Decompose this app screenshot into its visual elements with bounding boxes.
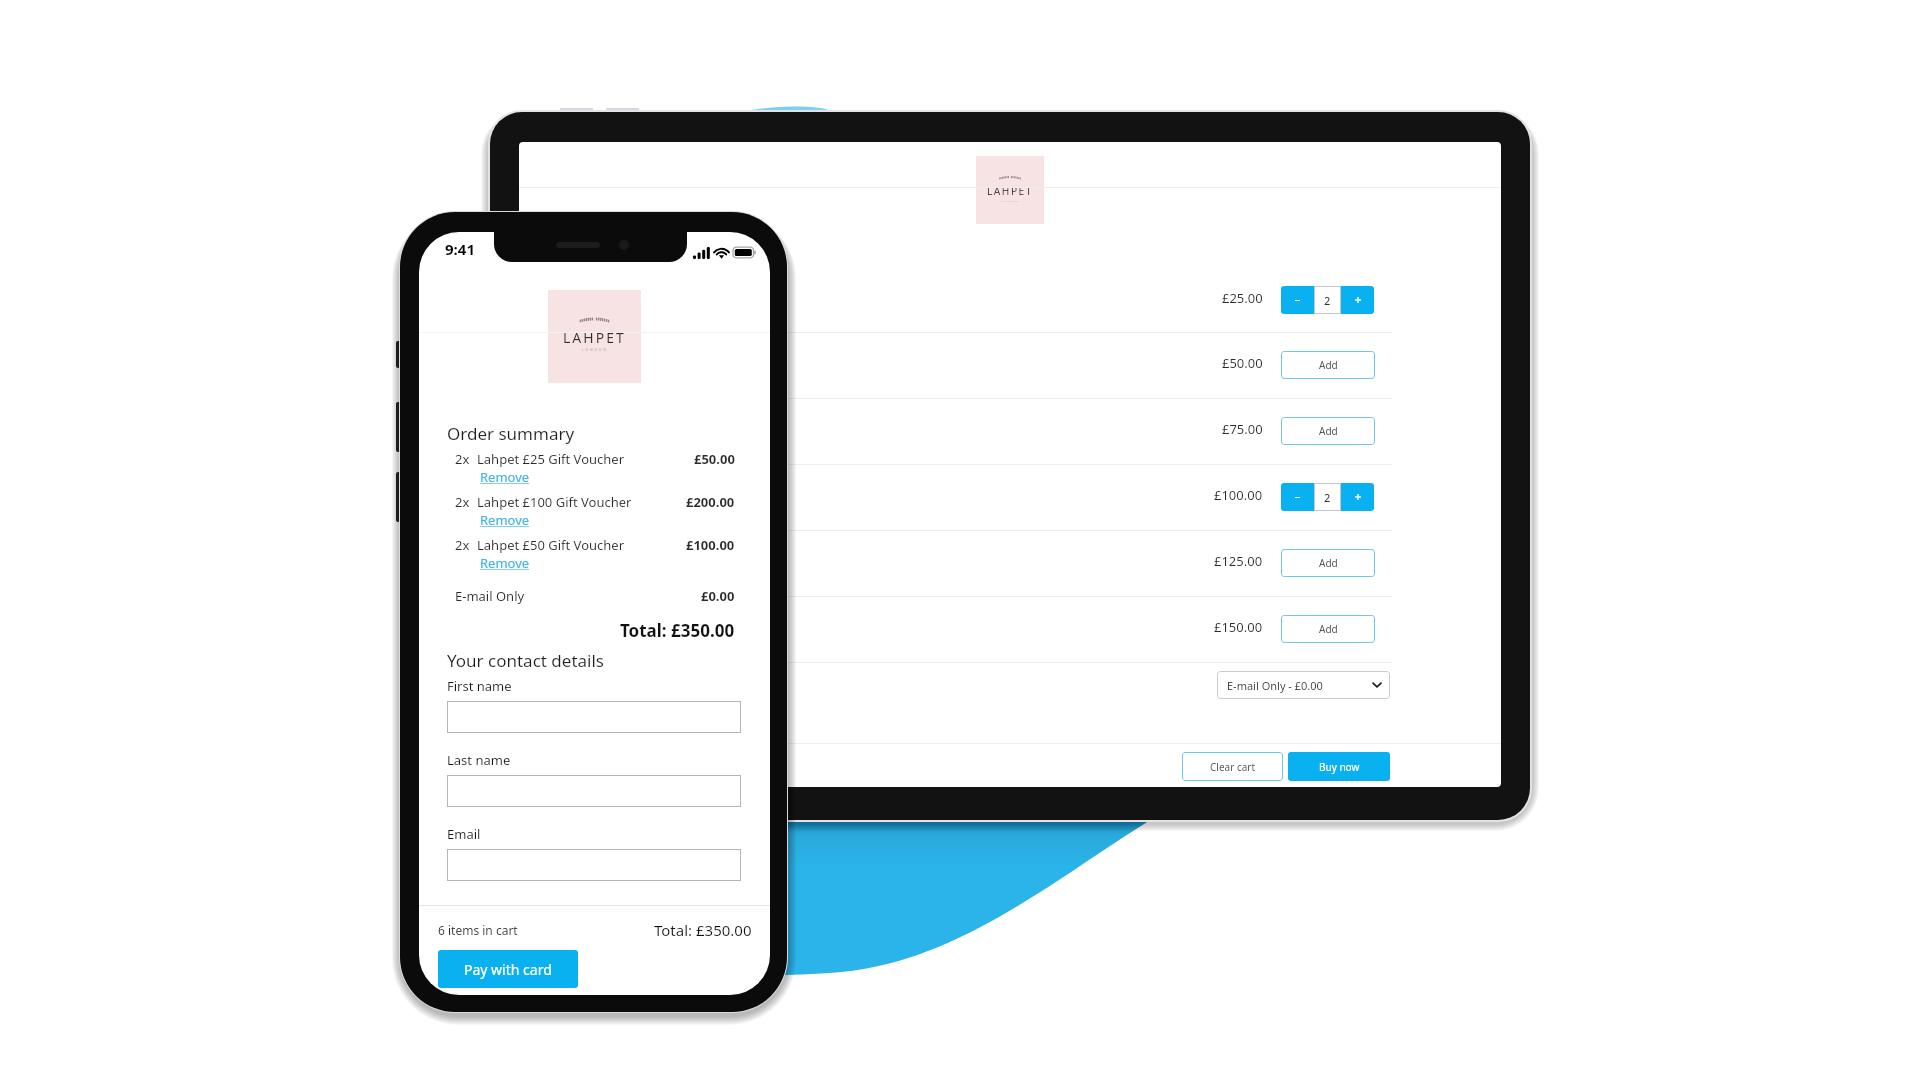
button[interactable]: Add: [1281, 351, 1375, 379]
staticText: £150.00: [1214, 618, 1263, 636]
staticText: 2x: [455, 493, 470, 511]
staticText: LAHPET: [987, 184, 1033, 198]
staticText: Add: [1319, 622, 1338, 636]
staticText: Lahpet £50 Gift Voucher: [477, 536, 625, 554]
staticText: Add: [1319, 358, 1338, 372]
staticText: LONDON: [582, 347, 608, 352]
button[interactable]: Clear cart: [1182, 752, 1283, 781]
staticText: Lahpet £100 Gift Voucher: [477, 493, 632, 511]
button[interactable]: [447, 849, 741, 881]
staticText: 2: [1324, 490, 1331, 505]
button[interactable]: Add: [1281, 417, 1375, 445]
button[interactable]: [447, 775, 741, 807]
staticText: Total: £350.00: [654, 920, 752, 940]
staticText: LAHPET: [563, 328, 626, 347]
staticText: £25.00: [1222, 289, 1263, 307]
staticText: £200.00: [686, 493, 735, 511]
button[interactable]: Buy now: [1288, 752, 1390, 781]
staticText: E-mail Only - £0.00: [1227, 678, 1323, 693]
staticText: Remove: [480, 468, 530, 486]
staticText: 9:41: [445, 239, 475, 259]
button[interactable]: Decrease quantity: [1281, 286, 1314, 314]
staticText: 6 items in cart: [438, 922, 518, 938]
button[interactable]: Decrease quantity: [1281, 483, 1314, 511]
button[interactable]: Remove: [480, 554, 530, 572]
staticText: Remove: [480, 511, 530, 529]
staticText: £100.00: [1214, 486, 1263, 504]
button[interactable]: Add: [1281, 615, 1375, 643]
button[interactable]: Increase quantity: [1341, 286, 1374, 314]
staticText: Buy now: [1319, 760, 1360, 774]
staticText: Last name: [447, 751, 511, 769]
staticText: £100.00: [686, 536, 735, 554]
button[interactable]: Pay with card: [438, 950, 578, 988]
staticText: First name: [447, 677, 512, 695]
staticText: Your contact details: [447, 649, 604, 672]
staticText: £50.00: [694, 450, 735, 468]
button[interactable]: Remove: [480, 468, 530, 486]
staticText: 2x: [455, 450, 470, 468]
button[interactable]: Increase quantity: [1341, 483, 1374, 511]
staticText: Total: £350.00: [620, 619, 735, 642]
staticText: 2: [1324, 293, 1331, 308]
staticText: £125.00: [1214, 552, 1263, 570]
staticText: Email: [447, 825, 481, 843]
staticText: Add: [1319, 556, 1338, 570]
staticText: LONDON: [1001, 199, 1020, 202]
staticText: Add: [1319, 424, 1338, 438]
staticText: Remove: [480, 554, 530, 572]
staticText: Lahpet £25 Gift Voucher: [477, 450, 625, 468]
button[interactable]: E-mail Only - £0.00: [1217, 671, 1390, 699]
staticText: 2x: [455, 536, 470, 554]
staticText: £75.00: [1222, 420, 1263, 438]
staticText: E-mail Only: [455, 587, 525, 605]
staticText: Clear cart: [1210, 760, 1256, 774]
button[interactable]: Remove: [480, 511, 530, 529]
staticText: Pay with card: [464, 960, 552, 979]
button[interactable]: [447, 701, 741, 733]
staticText: £0.00: [701, 587, 735, 605]
button[interactable]: Add: [1281, 549, 1375, 577]
staticText: £50.00: [1222, 354, 1263, 372]
staticText: Order summary: [447, 422, 575, 445]
